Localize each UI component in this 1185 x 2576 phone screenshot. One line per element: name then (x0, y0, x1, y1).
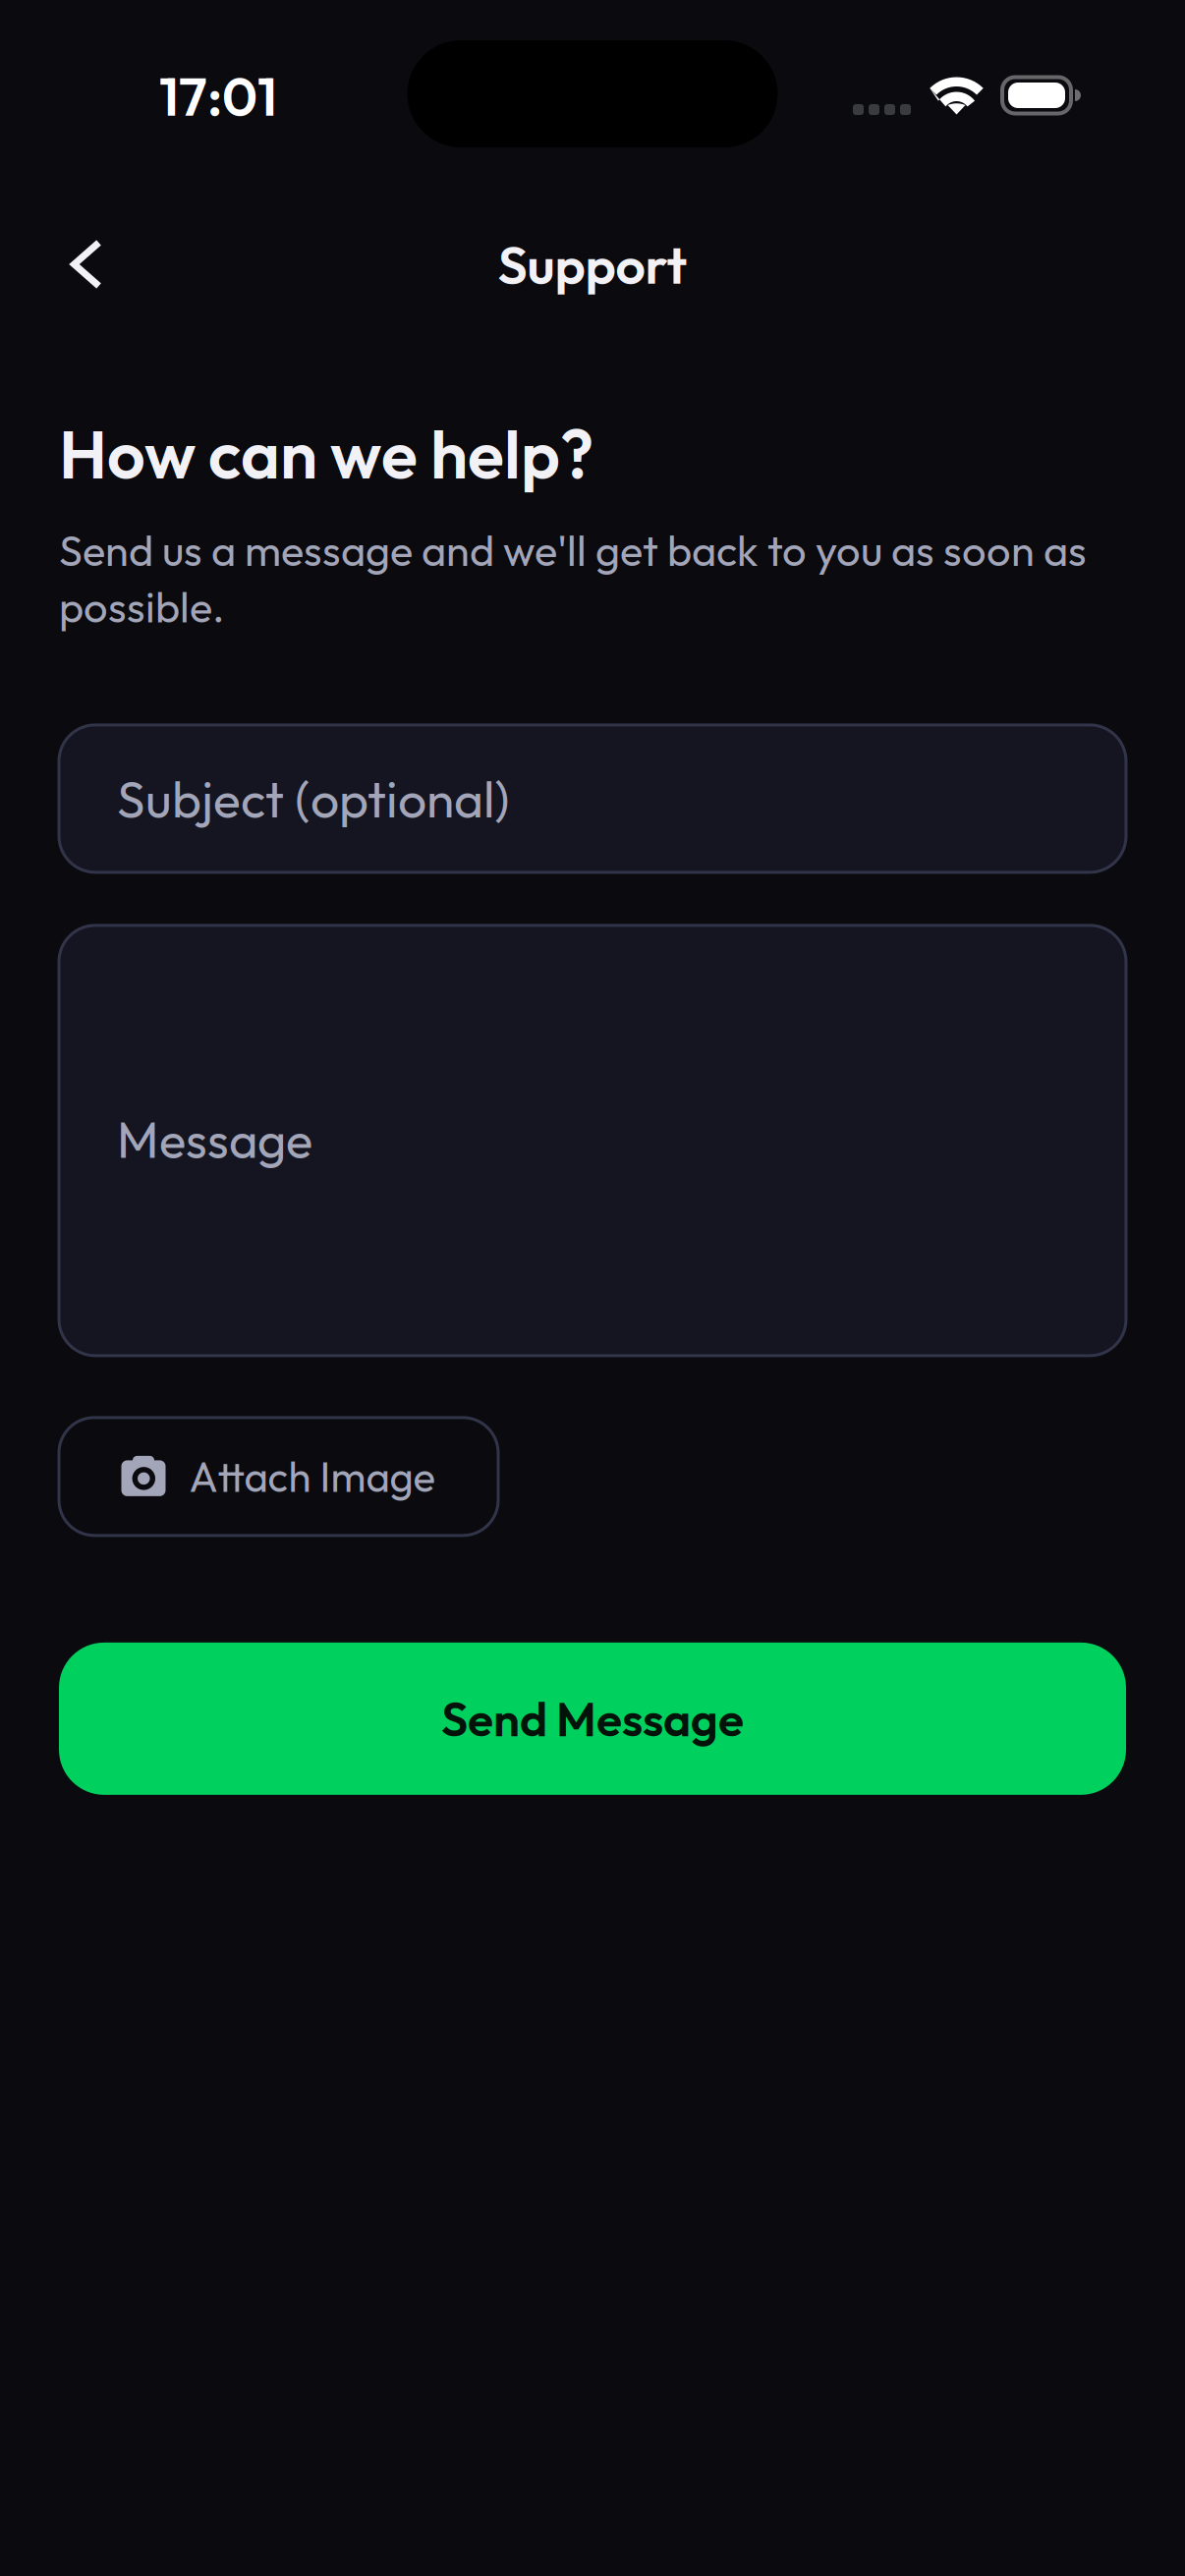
staticText: Message (117, 1108, 312, 1171)
staticText: 17:01 (159, 62, 277, 130)
staticText: Send Message (441, 1689, 744, 1748)
staticText: How can we help? (59, 412, 593, 496)
staticText: Support (498, 231, 687, 297)
staticText: Attach Image (189, 1450, 436, 1502)
button[interactable]: Attach Image (59, 1418, 498, 1535)
button[interactable]: Back (38, 216, 135, 312)
staticText: Send us a message and we'll get back to … (59, 523, 1087, 634)
button[interactable]: Send Message (59, 1643, 1126, 1795)
staticText: Subject (optional) (117, 767, 510, 831)
